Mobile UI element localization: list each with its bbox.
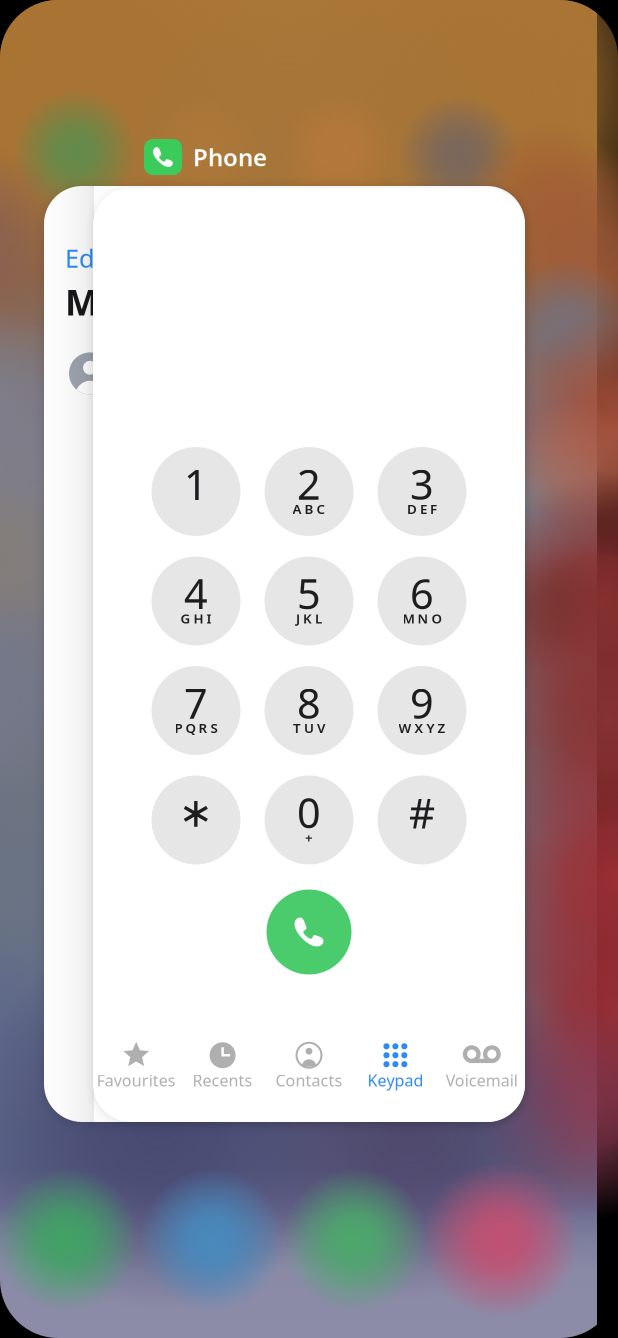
staticText: ∗ bbox=[178, 789, 213, 836]
button[interactable]: Call bbox=[266, 889, 351, 974]
staticText: Favourites bbox=[97, 1070, 176, 1091]
staticText: 9 bbox=[410, 675, 434, 730]
staticText: 5 bbox=[297, 566, 321, 621]
staticText: P Q R S bbox=[174, 719, 217, 737]
staticText: J K L bbox=[296, 610, 322, 627]
staticText: + bbox=[305, 829, 313, 846]
staticText: W X Y Z bbox=[398, 719, 445, 737]
button[interactable]: Keypad bbox=[352, 1020, 439, 1095]
staticText: Voicemail bbox=[446, 1070, 518, 1091]
staticText: 6 bbox=[410, 566, 434, 621]
button[interactable]: 0 bbox=[264, 775, 353, 864]
button[interactable]: # bbox=[377, 775, 466, 864]
staticText: Phone bbox=[193, 141, 267, 173]
staticText: 8 bbox=[297, 675, 321, 730]
staticText: Contacts bbox=[275, 1070, 342, 1091]
button[interactable]: 8 bbox=[264, 666, 353, 755]
staticText: Recents bbox=[193, 1070, 253, 1091]
button[interactable]: 5 bbox=[264, 556, 353, 645]
staticText: 7 bbox=[184, 675, 208, 730]
staticText: 1 bbox=[184, 457, 208, 511]
staticText: 2 bbox=[297, 456, 321, 511]
staticText: # bbox=[408, 785, 435, 840]
button[interactable]: 3 bbox=[377, 447, 466, 536]
button[interactable]: 7 bbox=[151, 666, 240, 755]
staticText: Edit bbox=[65, 241, 111, 275]
button[interactable]: 6 bbox=[377, 556, 466, 645]
staticText: 4 bbox=[184, 566, 208, 621]
staticText: A B C bbox=[292, 500, 325, 518]
button[interactable]: Recents bbox=[179, 1020, 266, 1095]
button[interactable]: 2 bbox=[264, 447, 353, 536]
staticText: M bbox=[65, 278, 99, 325]
button[interactable]: ∗ bbox=[151, 775, 240, 864]
button[interactable]: 9 bbox=[377, 666, 466, 755]
button[interactable]: Favourites bbox=[93, 1020, 179, 1095]
button[interactable]: Edit bbox=[44, 241, 111, 275]
staticText: 3 bbox=[410, 456, 434, 511]
button[interactable]: Contacts bbox=[266, 1020, 352, 1095]
button[interactable]: 1 bbox=[151, 447, 240, 536]
staticText: 0 bbox=[297, 785, 321, 840]
staticText: T U V bbox=[293, 719, 325, 737]
button[interactable]: 4 bbox=[151, 556, 240, 645]
staticText: Keypad bbox=[367, 1070, 423, 1091]
staticText: M N O bbox=[402, 610, 441, 627]
staticText: D E F bbox=[407, 500, 437, 518]
button[interactable]: Voicemail bbox=[439, 1020, 525, 1095]
staticText: G H I bbox=[180, 610, 211, 627]
